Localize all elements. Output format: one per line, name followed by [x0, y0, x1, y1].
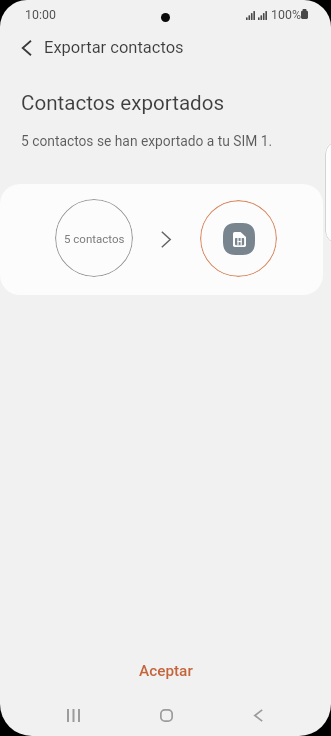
button[interactable]: 5 contactos — [55, 199, 133, 277]
button[interactable]: Home — [142, 691, 190, 736]
button[interactable]: SIM 1 — [200, 200, 277, 277]
staticText: 5 contactos — [64, 232, 125, 245]
button[interactable]: Back — [12, 33, 42, 63]
staticText: 100% — [271, 7, 301, 22]
button[interactable]: Recent apps — [49, 691, 97, 736]
button[interactable]: Aceptar — [0, 654, 331, 688]
staticText: 10:00 — [25, 7, 56, 22]
button[interactable]: Back — [234, 691, 282, 736]
staticText: 5 contactos se han exportado a tu SIM 1. — [21, 133, 273, 149]
staticText: Contactos exportados — [21, 91, 225, 115]
staticText: Aceptar — [139, 662, 193, 680]
staticText: Exportar contactos — [44, 38, 184, 57]
